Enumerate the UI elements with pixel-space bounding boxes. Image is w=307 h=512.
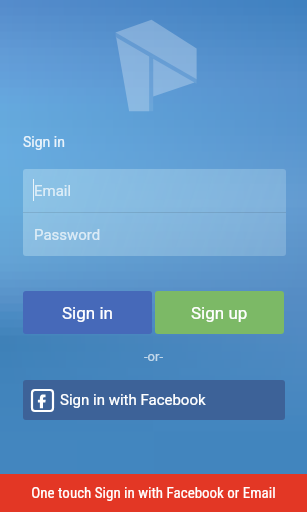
other: Facebook bbox=[32, 390, 53, 411]
staticText: Email bbox=[34, 182, 72, 200]
button[interactable]: Password bbox=[23, 213, 286, 256]
staticText: Password bbox=[34, 226, 101, 244]
staticText: Sign up bbox=[191, 303, 248, 323]
staticText: Sign in bbox=[62, 303, 113, 323]
staticText: -or- bbox=[144, 349, 164, 364]
button[interactable]: Sign up bbox=[155, 291, 284, 334]
button[interactable]: Email bbox=[23, 169, 286, 212]
staticText: Sign in with Facebook bbox=[60, 391, 206, 409]
staticText: Sign in bbox=[23, 134, 65, 150]
button[interactable]: Sign in bbox=[23, 291, 152, 334]
staticText: One touch Sign in with Facebook or Email bbox=[31, 484, 276, 502]
button[interactable]: Facebook bbox=[23, 380, 285, 420]
button[interactable]: One touch Sign in with Facebook or Email bbox=[0, 474, 307, 512]
